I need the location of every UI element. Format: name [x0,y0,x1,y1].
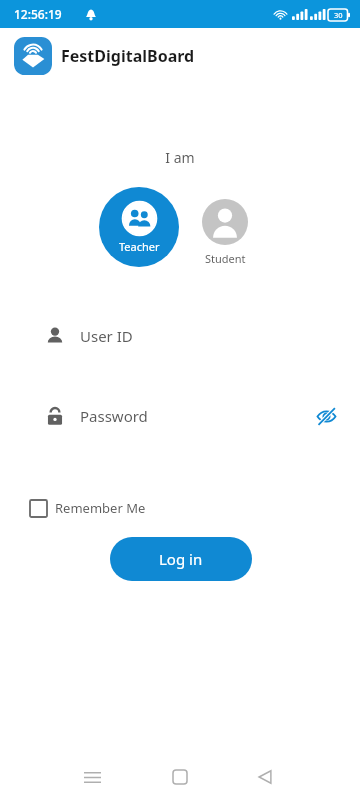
staticText: I am [0,148,360,167]
staticText: User ID [80,326,133,346]
button[interactable]: Show password [312,402,340,430]
staticText: Password [80,406,148,426]
button[interactable]: Log in [110,537,252,581]
staticText: 30 [334,10,343,20]
button[interactable]: Recent apps [78,763,106,791]
staticText: FestDigitalBoard [61,45,195,67]
button[interactable]: Password [0,399,360,433]
staticText: Remember Me [55,499,146,517]
button[interactable]: Remember Me [24,491,152,525]
button[interactable]: Back [251,763,279,791]
staticText: Student [205,251,246,266]
button[interactable]: Student [196,199,254,266]
button[interactable]: Teacher [99,187,179,267]
staticText: Log in [159,549,203,569]
button[interactable]: Home [166,763,194,791]
staticText: Teacher [119,239,160,254]
staticText: 12:56:19 [14,6,62,22]
button[interactable]: User ID [0,319,360,353]
